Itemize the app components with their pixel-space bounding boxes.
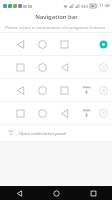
staticText: Navigation bar: [35, 13, 78, 21]
button[interactable]: [0, 33, 112, 55]
staticText: Open notification panel: [19, 130, 67, 136]
staticText: Please select a combination of navigatio…: [5, 24, 106, 30]
staticText: 11:38: [99, 3, 110, 9]
button[interactable]: Home: [38, 186, 75, 200]
button[interactable]: [0, 102, 112, 124]
button[interactable]: Open notification panel: [0, 125, 112, 141]
button[interactable]: Back: [0, 186, 38, 200]
button[interactable]: [0, 79, 112, 101]
button[interactable]: Recents: [75, 186, 112, 200]
staticText: 94%: [81, 4, 89, 9]
button[interactable]: [0, 56, 112, 78]
